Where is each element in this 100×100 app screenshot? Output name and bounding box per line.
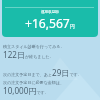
staticText: 122日が経ちました。: [3, 49, 54, 60]
staticText: +16,567円: [25, 15, 75, 31]
staticText: 次の注文予定日まで、あと29日です。: [3, 67, 82, 78]
staticText: 運用収益額: [41, 10, 59, 14]
staticText: 次の注文予定日に必要な金額は、: [3, 80, 65, 85]
button[interactable]: 運用収益額: [2, 0, 98, 37]
staticText: 積立スタイル診断を行ってみる。: [3, 44, 65, 49]
staticText: 10,000円です。: [3, 85, 49, 96]
